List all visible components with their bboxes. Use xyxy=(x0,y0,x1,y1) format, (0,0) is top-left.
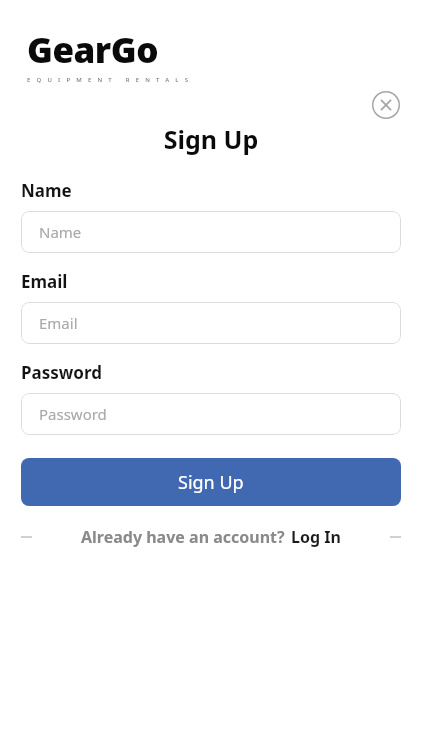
button[interactable]: Close xyxy=(370,89,402,121)
staticText: EQUIPMENT RENTALS xyxy=(27,76,195,84)
staticText: Email xyxy=(39,313,78,333)
staticText: Sign Up xyxy=(21,122,401,156)
staticText: Password xyxy=(39,404,107,424)
button[interactable]: Already have an account? xyxy=(81,526,341,548)
staticText: GearGo xyxy=(27,26,158,74)
staticText: Name xyxy=(21,179,72,202)
button[interactable]: Email xyxy=(21,302,401,344)
staticText: Sign Up xyxy=(178,470,244,495)
staticText: Email xyxy=(21,270,68,293)
staticText: Password xyxy=(21,361,102,384)
staticText: Log In xyxy=(291,526,341,548)
button[interactable]: Sign Up xyxy=(21,458,401,506)
staticText: Name xyxy=(39,222,82,242)
staticText: Already have an account? xyxy=(81,526,285,548)
button[interactable]: Password xyxy=(21,393,401,435)
button[interactable]: Name xyxy=(21,211,401,253)
